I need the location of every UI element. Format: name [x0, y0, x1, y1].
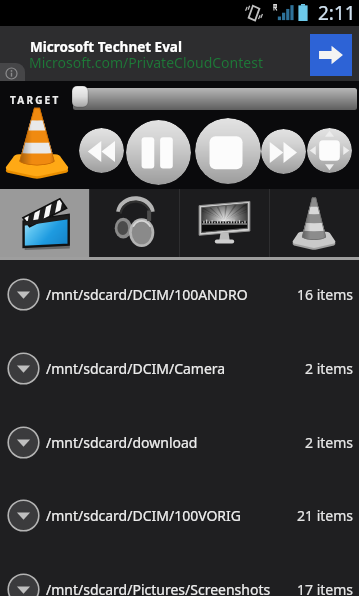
button[interactable]: Stop — [195, 118, 261, 184]
staticText: 16 items — [296, 285, 353, 304]
staticText: /mnt/sdcard/download — [46, 433, 304, 452]
button[interactable]: Microsoft Technet Eval — [0, 26, 359, 81]
button[interactable]: /mnt/sdcard/DCIM/Camera — [0, 331, 359, 405]
button[interactable]: /mnt/sdcard/DCIM/100VORIG — [0, 478, 359, 552]
button[interactable]: Audio — [89, 189, 179, 257]
button[interactable]: Fast forward — [261, 129, 306, 174]
button[interactable]: Pause — [126, 120, 191, 185]
staticText: 2:11 — [318, 0, 356, 26]
button[interactable]: VLC — [269, 189, 359, 257]
staticText: Microsoft.com/PrivateCloudContest — [29, 53, 263, 72]
staticText: /mnt/sdcard/DCIM/100VORIG — [46, 506, 296, 525]
button[interactable]: /mnt/sdcard/DCIM/100ANDRO — [0, 257, 359, 331]
button[interactable]: Video — [0, 189, 89, 257]
staticText: 17 items — [296, 580, 353, 596]
button[interactable]: /mnt/sdcard/Pictures/Screenshots — [0, 552, 359, 596]
button[interactable]: Rewind — [79, 128, 124, 173]
button[interactable]: Ad information — [0, 63, 25, 81]
staticText: 21 items — [296, 506, 353, 525]
staticText: Microsoft Technet Eval — [30, 38, 182, 56]
staticText: 2 items — [304, 359, 353, 378]
staticText: /mnt/sdcard/DCIM/100ANDRO — [46, 285, 296, 304]
button[interactable]: Open advertisement — [310, 34, 352, 76]
button[interactable]: Aspect ratio — [307, 128, 352, 173]
staticText: /mnt/sdcard/DCIM/Camera — [46, 359, 304, 378]
button[interactable]: Browse — [179, 189, 269, 257]
button[interactable]: /mnt/sdcard/download — [0, 405, 359, 479]
staticText: /mnt/sdcard/Pictures/Screenshots — [46, 580, 296, 596]
staticText: 2 items — [304, 433, 353, 452]
staticText: TARGET — [10, 93, 61, 107]
